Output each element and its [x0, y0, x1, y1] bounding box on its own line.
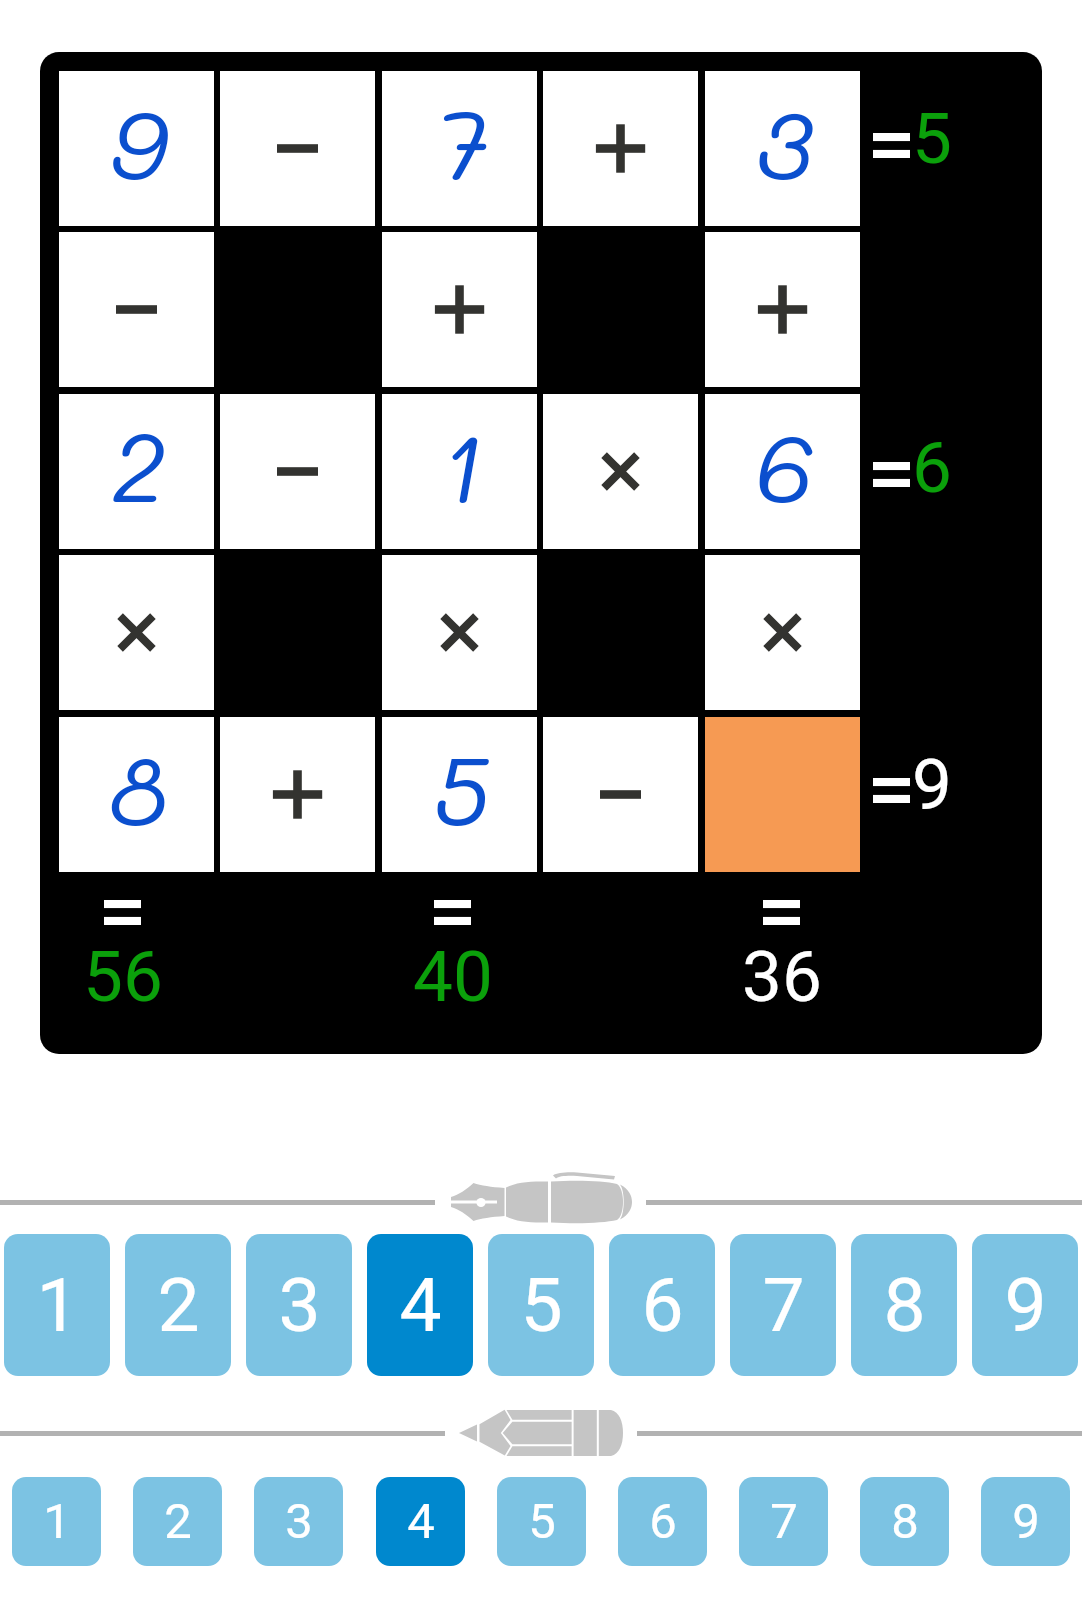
button[interactable]: Plus [705, 232, 860, 387]
staticText: 2 [111, 401, 166, 527]
button[interactable]: Minus [220, 71, 375, 226]
staticText: 6 [912, 426, 952, 509]
button[interactable]: 3 [246, 1234, 352, 1376]
staticText: 5 [912, 97, 952, 180]
button[interactable]: 5 [488, 1234, 594, 1376]
staticText: 40 [413, 935, 493, 1018]
button[interactable]: Digit 2, row 3 column 1 [59, 394, 214, 549]
button[interactable]: 1 [12, 1477, 101, 1566]
button[interactable]: Digit 7, row 1 column 3 [382, 71, 537, 226]
button[interactable]: Minus [220, 394, 375, 549]
staticText: 5 [520, 1261, 563, 1349]
button[interactable]: Times [59, 555, 214, 710]
staticText: 9 [110, 78, 168, 204]
button[interactable]: Digit 3, row 1 column 5 [705, 71, 860, 226]
button[interactable]: 4 [376, 1477, 465, 1566]
button[interactable]: Times [705, 555, 860, 710]
button[interactable]: Minus [59, 232, 214, 387]
button[interactable]: 6 [609, 1234, 715, 1376]
staticText: 1 [36, 1261, 79, 1349]
button[interactable]: 4 [367, 1234, 473, 1376]
button[interactable]: Times [382, 555, 537, 710]
button[interactable]: Digit 8, row 5 column 1 [59, 717, 214, 872]
button[interactable]: 3 [254, 1477, 343, 1566]
staticText: 5 [528, 1493, 556, 1550]
button[interactable]: Pencil notes mode [445, 1400, 637, 1466]
staticText: 1 [440, 401, 484, 527]
staticText: 3 [756, 78, 813, 204]
staticText: 4 [407, 1493, 435, 1550]
staticText: 1 [43, 1493, 71, 1550]
staticText: 6 [649, 1493, 677, 1550]
button[interactable]: Digit 6, row 3 column 5 [705, 394, 860, 549]
button[interactable]: 2 [125, 1234, 231, 1376]
staticText: 3 [278, 1261, 321, 1349]
staticText: 7 [770, 1493, 798, 1550]
button[interactable]: Minus [543, 717, 698, 872]
staticText: 8 [883, 1261, 926, 1349]
button[interactable]: Digit 9, row 1 column 1 [59, 71, 214, 226]
staticText: 8 [891, 1493, 919, 1550]
staticText: 7 [435, 78, 489, 204]
staticText: 56 [83, 935, 163, 1018]
button[interactable]: 1 [4, 1234, 110, 1376]
button[interactable]: 8 [851, 1234, 957, 1376]
button[interactable]: 8 [860, 1477, 949, 1566]
button[interactable]: Digit 1, row 3 column 3 [382, 394, 537, 549]
staticText: 5 [433, 724, 490, 850]
button[interactable]: Plus [543, 71, 698, 226]
staticText: 36 [742, 935, 822, 1018]
staticText: 2 [164, 1493, 192, 1550]
button[interactable]: Digit 5, row 5 column 3 [382, 717, 537, 872]
staticText: 7 [762, 1261, 805, 1349]
button[interactable]: 7 [730, 1234, 836, 1376]
button[interactable]: Plus [220, 717, 375, 872]
staticText: 9 [1012, 1493, 1040, 1550]
button[interactable]: 9 [972, 1234, 1078, 1376]
button[interactable]: 7 [739, 1477, 828, 1566]
button[interactable]: 2 [133, 1477, 222, 1566]
button[interactable]: 9 [981, 1477, 1070, 1566]
staticText: 2 [157, 1261, 200, 1349]
staticText: 8 [109, 724, 168, 850]
button[interactable]: 6 [618, 1477, 707, 1566]
staticText: 6 [755, 401, 814, 527]
staticText: 6 [641, 1261, 684, 1349]
button[interactable]: Plus [382, 232, 537, 387]
button[interactable]: 5 [497, 1477, 586, 1566]
staticText: 4 [399, 1261, 442, 1349]
staticText: 9 [1004, 1261, 1047, 1349]
staticText: 3 [285, 1493, 313, 1550]
staticText: 9 [912, 743, 952, 826]
button[interactable]: Pen mode [435, 1169, 646, 1235]
button[interactable]: Times [543, 394, 698, 549]
